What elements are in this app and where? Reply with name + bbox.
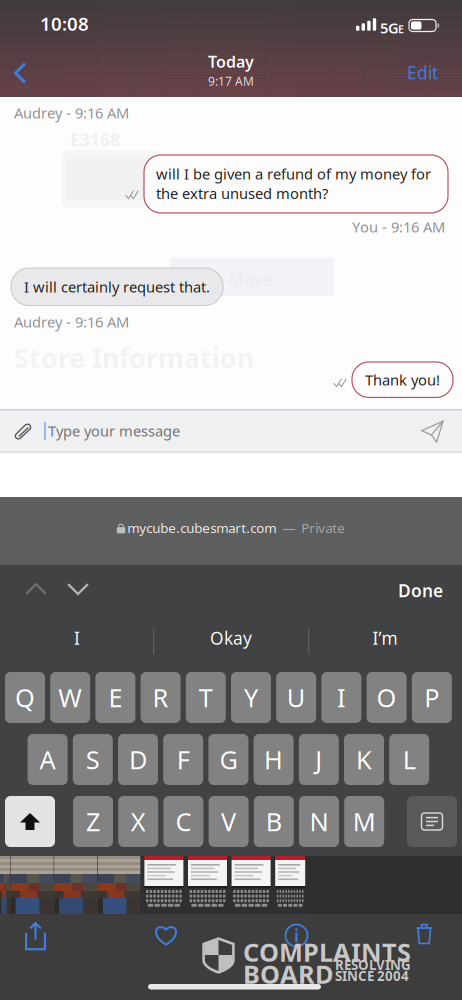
staticText: mycube.cubesmart.com	[127, 519, 276, 537]
staticText: K	[356, 743, 372, 776]
button[interactable]: Send message	[421, 420, 444, 443]
staticText: i	[294, 924, 299, 947]
staticText: Thank you!	[365, 370, 440, 389]
staticText: C	[175, 805, 191, 838]
button[interactable]: N	[299, 796, 339, 847]
button[interactable]: L	[389, 734, 429, 785]
staticText: Y	[244, 681, 258, 714]
staticText: Store Information	[14, 340, 254, 375]
staticText: H	[264, 743, 283, 776]
staticText: Q	[15, 681, 35, 714]
button[interactable]: D	[118, 734, 158, 785]
button[interactable]: Scan text	[407, 796, 457, 847]
staticText: 9:17 AM	[208, 73, 254, 89]
button[interactable]: Bookmarks	[155, 925, 177, 946]
staticText: RESOLVING	[335, 956, 411, 974]
button[interactable]: P	[412, 672, 452, 723]
button[interactable]: X	[118, 796, 158, 847]
button[interactable]: Z	[73, 796, 113, 847]
staticText: Audrey - 9:16 AM	[14, 103, 129, 122]
button[interactable]: F	[163, 734, 203, 785]
staticText: U	[287, 681, 306, 714]
staticText: T	[199, 681, 213, 714]
button[interactable]: Shift	[5, 796, 55, 847]
staticText: I	[337, 681, 346, 714]
staticText: G	[219, 743, 237, 776]
staticText: Z	[86, 805, 100, 838]
staticText: D	[129, 743, 147, 776]
staticText: Edit	[407, 61, 438, 84]
button[interactable]: W	[50, 672, 90, 723]
staticText: O	[377, 681, 397, 714]
staticText: B	[266, 805, 282, 838]
button[interactable]: U	[276, 672, 316, 723]
button[interactable]: Q	[5, 672, 45, 723]
staticText: E3168	[70, 128, 120, 151]
staticText: V	[221, 805, 236, 838]
button[interactable]: Y	[231, 672, 271, 723]
staticText: I will certainly request that.	[24, 277, 210, 296]
staticText: X	[131, 805, 146, 838]
button[interactable]: Previous field	[19, 577, 53, 601]
button[interactable]: R	[141, 672, 181, 723]
button[interactable]: Back	[5, 53, 36, 93]
staticText: N	[309, 805, 328, 838]
button[interactable]: M	[344, 796, 384, 847]
button[interactable]: Share	[25, 922, 46, 950]
button[interactable]: K	[344, 734, 384, 785]
staticText: E	[108, 681, 122, 714]
button[interactable]: A	[28, 734, 68, 785]
button[interactable]: O	[367, 672, 407, 723]
staticText: R	[153, 681, 169, 714]
button[interactable]: V	[209, 796, 249, 847]
staticText: 10:08	[40, 11, 89, 36]
button[interactable]: I	[0, 616, 154, 660]
button[interactable]: B	[254, 796, 294, 847]
button[interactable]: Next field	[61, 577, 95, 601]
staticText: I	[74, 626, 80, 649]
staticText: Type your message	[48, 421, 180, 440]
button[interactable]: E	[95, 672, 135, 723]
staticText: W	[58, 681, 82, 714]
staticText: will I be given a refund of my money for…	[156, 164, 431, 203]
button[interactable]: I	[321, 672, 361, 723]
button[interactable]: Done	[390, 574, 451, 607]
button[interactable]: G	[208, 734, 248, 785]
staticText: S	[86, 743, 100, 776]
staticText: Audrey - 9:16 AM	[14, 312, 129, 331]
staticText: E	[398, 22, 404, 36]
staticText: — Private	[276, 519, 345, 537]
button[interactable]: Edit	[397, 57, 448, 88]
staticText: Okay	[210, 626, 252, 649]
staticText: You - 9:16 AM	[352, 217, 445, 236]
staticText: COMPLAINTS	[243, 935, 411, 969]
button[interactable]: J	[299, 734, 339, 785]
button[interactable]: I’m	[308, 616, 462, 660]
button[interactable]: C	[163, 796, 203, 847]
button[interactable]: Okay	[154, 616, 308, 660]
staticText: M	[353, 805, 376, 838]
staticText: P	[424, 681, 439, 714]
staticText: F	[177, 743, 190, 776]
staticText: L	[403, 743, 416, 776]
staticText: 5G	[380, 18, 399, 37]
staticText: J	[315, 743, 322, 776]
button[interactable]: S	[73, 734, 113, 785]
staticText: BOARD	[243, 957, 334, 991]
button[interactable]: H	[254, 734, 294, 785]
staticText: SINCE 2004	[335, 967, 409, 985]
staticText: Today	[208, 51, 254, 72]
staticText: A	[40, 743, 56, 776]
button[interactable]: T	[186, 672, 226, 723]
button[interactable]: Attach file	[14, 421, 33, 441]
button[interactable]: Delete	[416, 923, 433, 945]
staticText: I’m	[372, 626, 397, 649]
button[interactable]: Page info	[285, 924, 308, 947]
staticText: Done	[398, 579, 443, 602]
